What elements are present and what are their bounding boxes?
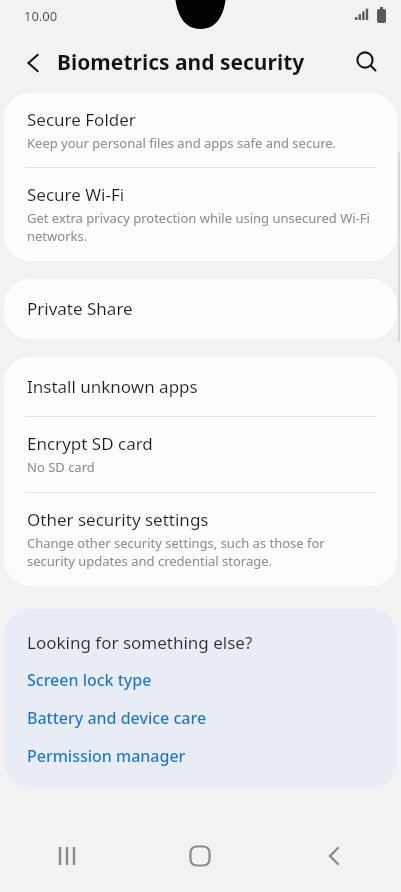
staticText: Keep your personal files and apps safe a… xyxy=(27,134,337,152)
staticText: 10.00 xyxy=(24,7,58,25)
staticText: Other security settings xyxy=(27,508,209,531)
staticText: Permission manager xyxy=(27,745,186,767)
staticText: Secure Folder xyxy=(27,108,136,131)
button[interactable]: Back xyxy=(267,828,401,884)
button[interactable]: Permission manager xyxy=(27,740,375,772)
staticText: Change other security settings, such as … xyxy=(27,534,375,570)
button[interactable]: Back xyxy=(14,44,52,82)
staticText: Biometrics and security xyxy=(57,48,305,77)
staticText: Encrypt SD card xyxy=(27,432,153,455)
button[interactable]: Home xyxy=(133,828,267,884)
button[interactable]: Screen lock type xyxy=(27,664,375,696)
staticText: Looking for something else? xyxy=(27,631,253,654)
staticText: No SD card xyxy=(27,458,95,476)
button[interactable]: Encrypt SD card xyxy=(4,417,397,492)
button[interactable]: Private Share xyxy=(4,279,397,339)
button[interactable]: Battery and device care xyxy=(27,702,375,734)
button[interactable]: Search xyxy=(347,42,385,80)
staticText: Get extra privacy protection while using… xyxy=(27,209,375,245)
staticText: Battery and device care xyxy=(27,707,207,729)
button[interactable]: Secure Folder xyxy=(4,93,397,167)
staticText: Install unknown apps xyxy=(27,375,198,398)
button[interactable]: Secure Wi-Fi xyxy=(4,168,397,261)
staticText: Screen lock type xyxy=(27,669,152,691)
staticText: Private Share xyxy=(27,297,133,320)
button[interactable]: Other security settings xyxy=(4,493,397,586)
staticText: Secure Wi-Fi xyxy=(27,183,125,206)
button[interactable]: Recent apps xyxy=(0,828,133,884)
button[interactable]: Install unknown apps xyxy=(4,357,397,416)
